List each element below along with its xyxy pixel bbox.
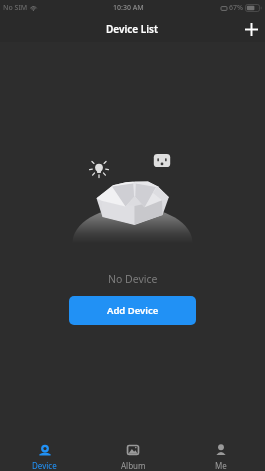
- button[interactable]: Add Device: [69, 296, 196, 325]
- button[interactable]: Album: [89, 431, 177, 471]
- staticText: 10:30 AM: [113, 3, 144, 13]
- staticText: Device: [32, 460, 57, 471]
- button[interactable]: Me: [177, 431, 265, 471]
- staticText: No Device: [108, 272, 158, 286]
- staticText: Me: [215, 460, 227, 471]
- button[interactable]: Add device: [237, 16, 265, 42]
- button[interactable]: Device: [0, 431, 89, 471]
- staticText: Device List: [106, 22, 159, 36]
- staticText: Album: [121, 460, 146, 471]
- staticText: No SIM: [3, 3, 28, 13]
- staticText: Add Device: [107, 304, 159, 317]
- staticText: 67%: [229, 3, 243, 13]
